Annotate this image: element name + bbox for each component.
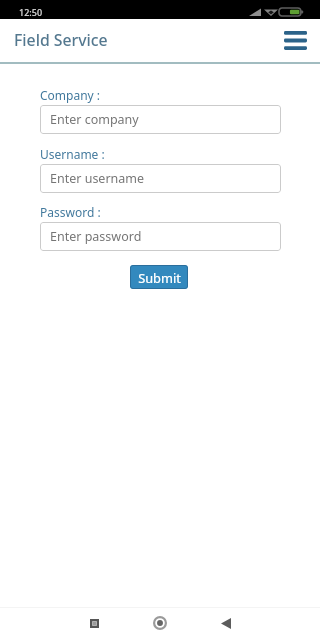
button[interactable]: Submit (130, 265, 188, 289)
button[interactable]: Back (204, 612, 248, 634)
button[interactable]: Recent apps (72, 612, 116, 634)
button[interactable]: Enter username (40, 164, 281, 193)
staticText: Password : (40, 204, 101, 220)
button[interactable]: Enter company (40, 105, 281, 134)
staticText: Submit (138, 269, 181, 286)
button[interactable]: Home (138, 611, 182, 635)
staticText: Company : (40, 87, 101, 103)
staticText: Username : (40, 146, 105, 162)
button[interactable]: Open navigation menu (276, 22, 314, 59)
staticText: Enter company (50, 111, 139, 128)
staticText: Field Service (14, 29, 108, 51)
button[interactable]: Enter password (40, 222, 281, 251)
staticText: Enter password (50, 228, 142, 245)
staticText: 12:50 (19, 6, 43, 18)
staticText: Enter username (50, 170, 145, 187)
